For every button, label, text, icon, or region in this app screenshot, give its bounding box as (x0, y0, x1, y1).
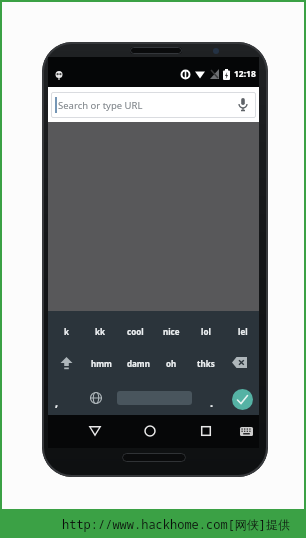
button[interactable]: cool (121, 314, 149, 349)
staticText: oh (166, 358, 177, 369)
staticText: cool (127, 326, 144, 337)
staticText: damn (127, 358, 150, 369)
button[interactable] (232, 357, 247, 368)
staticText: nice (163, 326, 180, 337)
button[interactable] (201, 426, 211, 436)
button[interactable]: , (49, 385, 65, 419)
staticText: 12:18 (234, 68, 256, 80)
button[interactable]: . (205, 385, 219, 419)
button[interactable] (144, 425, 156, 437)
staticText: thks (197, 358, 215, 369)
staticText: hmm (91, 358, 112, 369)
staticText: . (210, 395, 214, 410)
button[interactable] (90, 392, 102, 404)
button[interactable]: lel (229, 314, 257, 349)
button[interactable] (89, 426, 101, 436)
button[interactable]: hmm (86, 346, 116, 381)
button[interactable]: oh (156, 346, 186, 381)
staticText: http://www.hackhome.com[网侠]提供 (62, 516, 291, 532)
button[interactable]: k (52, 314, 80, 349)
staticText: Search or type URL (58, 99, 143, 112)
button[interactable]: nice (157, 314, 185, 349)
staticText: lol (201, 326, 211, 337)
button[interactable] (60, 357, 73, 369)
staticText: kk (95, 326, 105, 337)
button[interactable]: Search or type URL (51, 92, 256, 118)
button[interactable] (240, 427, 253, 436)
button[interactable]: lol (192, 314, 220, 349)
staticText: , (55, 395, 59, 410)
button[interactable]: damn (123, 346, 153, 381)
button[interactable]: kk (86, 314, 114, 349)
staticText: lel (238, 326, 248, 337)
staticText: k (64, 326, 69, 337)
button[interactable]: thks (191, 346, 221, 381)
button[interactable] (232, 389, 253, 410)
